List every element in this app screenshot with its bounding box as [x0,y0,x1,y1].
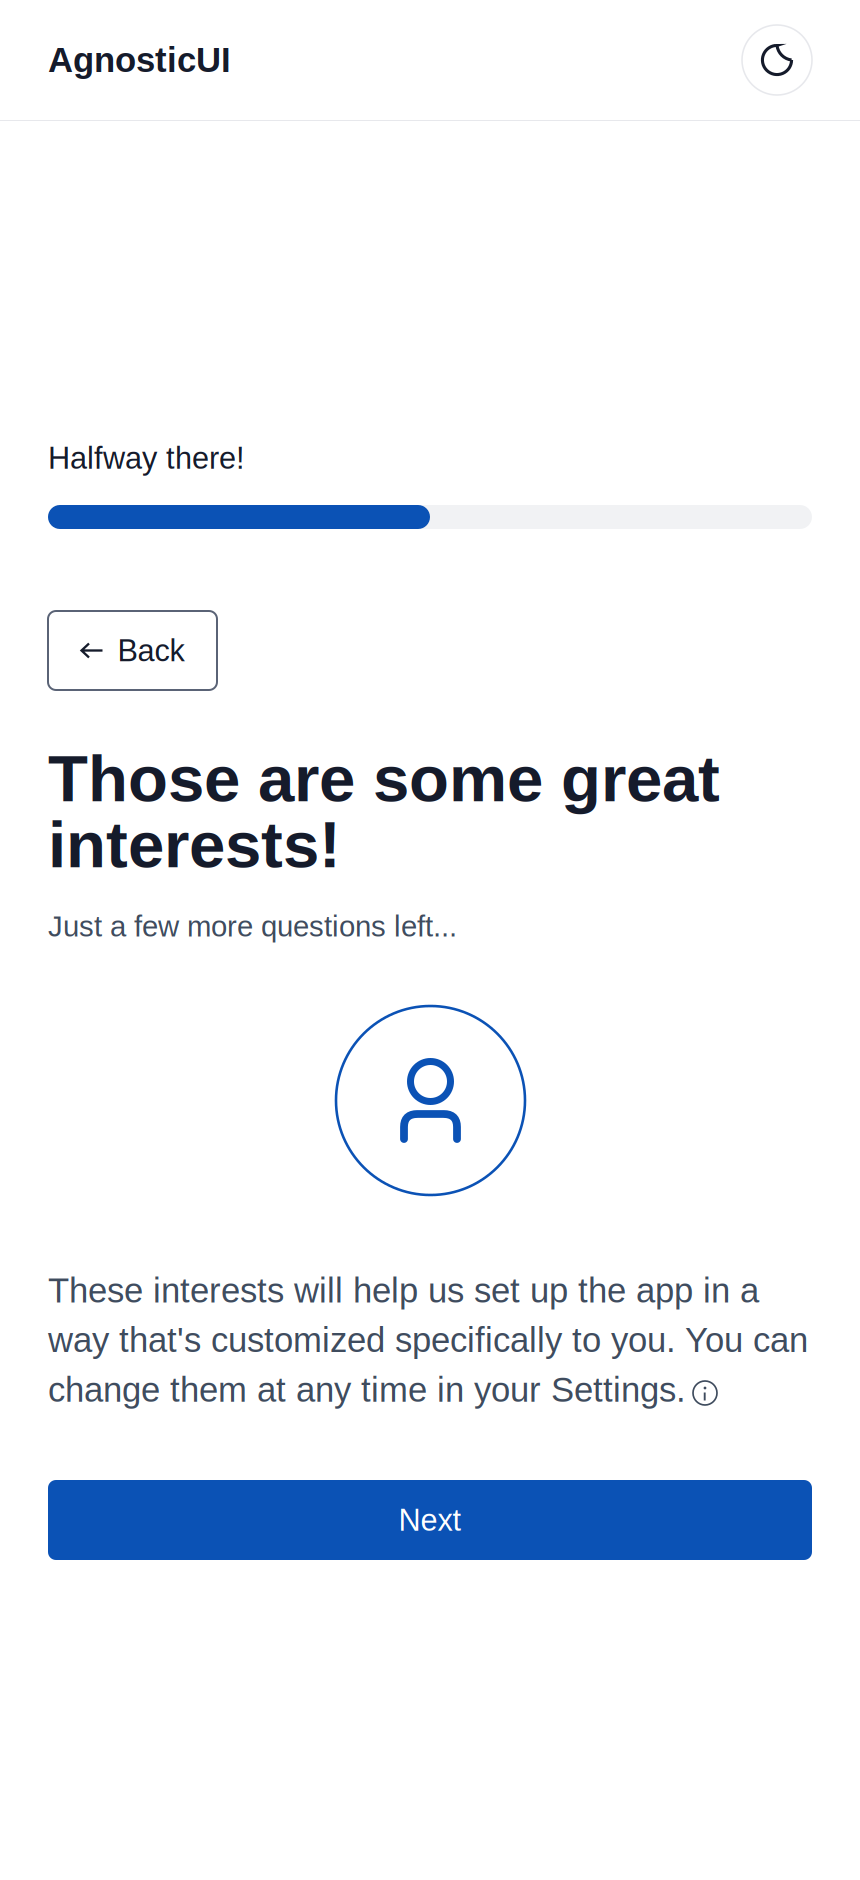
button[interactable]: Next [48,1480,812,1560]
staticText: These interests will help us set up the … [48,1271,808,1409]
button[interactable]: Toggle dark mode [742,25,812,95]
staticText: Just a few more questions left... [48,910,457,943]
staticText: Next [398,1503,461,1537]
staticText: Halfway there! [48,441,245,475]
staticText: Back [117,633,184,668]
staticText: AgnosticUI [48,41,231,79]
staticText: Those are some great interests! [48,742,720,881]
button[interactable]: Back [48,611,217,690]
